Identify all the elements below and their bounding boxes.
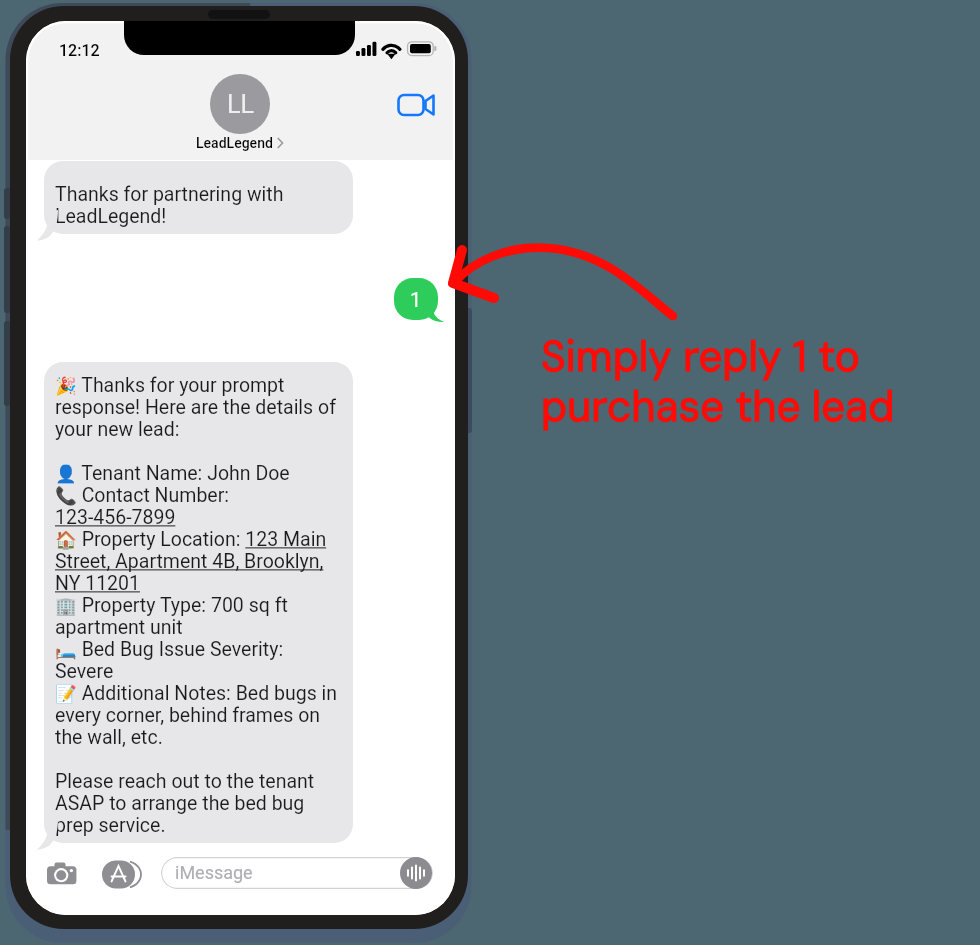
button[interactable]: Apps [102,859,146,889]
staticText: LeadLegend [196,135,273,151]
staticText: Simply reply 1 to purchase the lead [541,329,895,434]
staticText: 🎉 Thanks for your prompt response! Here … [55,374,338,837]
button[interactable]: LL [210,74,270,134]
button[interactable]: FaceTime video call [397,89,437,121]
button[interactable]: Thanks for partnering with LeadLegend! [37,161,346,234]
button[interactable]: Camera [47,861,77,889]
staticText: iMessage [175,862,253,883]
staticText: Thanks for partnering with LeadLegend! [55,183,284,228]
button[interactable]: iMessage [161,857,433,889]
staticText: 1 [410,288,422,311]
button[interactable]: 🎉 Thanks for your prompt response! Here … [37,362,346,843]
staticText: 12:12 [59,41,100,60]
button[interactable]: 1 [394,278,446,322]
button[interactable]: LeadLegend [196,135,284,151]
staticText: LL [227,90,254,119]
